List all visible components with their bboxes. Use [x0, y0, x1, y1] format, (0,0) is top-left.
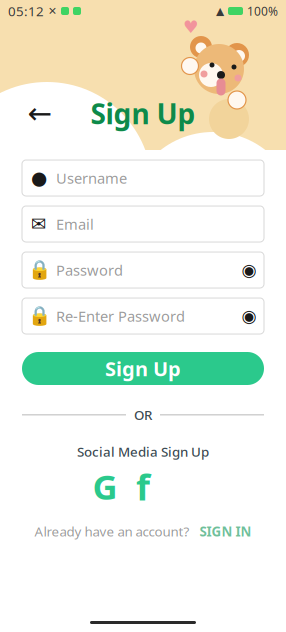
staticText: f: [136, 462, 150, 510]
staticText: ✕: [48, 5, 57, 17]
button[interactable]: Sign Up: [22, 352, 264, 385]
button[interactable]: Back: [22, 95, 58, 131]
staticText: Social Media Sign Up: [77, 443, 209, 460]
staticText: ●: [31, 167, 47, 189]
staticText: ◉: [241, 306, 256, 326]
staticText: Password: [56, 260, 123, 280]
button[interactable]: SIGN IN: [199, 522, 251, 540]
staticText: OR: [134, 406, 152, 424]
staticText: ◉: [241, 260, 256, 280]
button[interactable]: Sign up with Facebook: [125, 468, 161, 504]
button[interactable]: Show Re-Enter Password: [234, 298, 264, 334]
staticText: ←: [27, 97, 52, 130]
staticText: SIGN IN: [199, 522, 251, 540]
staticText: Sign Up: [90, 95, 195, 132]
staticText: Sign Up: [105, 355, 181, 382]
staticText: Already have an account?: [34, 522, 189, 540]
staticText: G: [92, 463, 117, 509]
staticText: 🔒: [27, 305, 50, 327]
staticText: 05:12: [8, 2, 44, 20]
staticText: ✉: [31, 213, 47, 235]
button[interactable]: Sign up with Google: [87, 468, 123, 504]
staticText: Username: [56, 168, 127, 188]
staticText: ▲: [216, 5, 224, 17]
button[interactable]: Show Password: [234, 252, 264, 288]
staticText: Email: [56, 214, 94, 234]
staticText: 100%: [247, 3, 278, 19]
staticText: 🔒: [27, 259, 50, 281]
staticText: Re-Enter Password: [56, 306, 185, 326]
staticText: ♥: [183, 17, 199, 37]
